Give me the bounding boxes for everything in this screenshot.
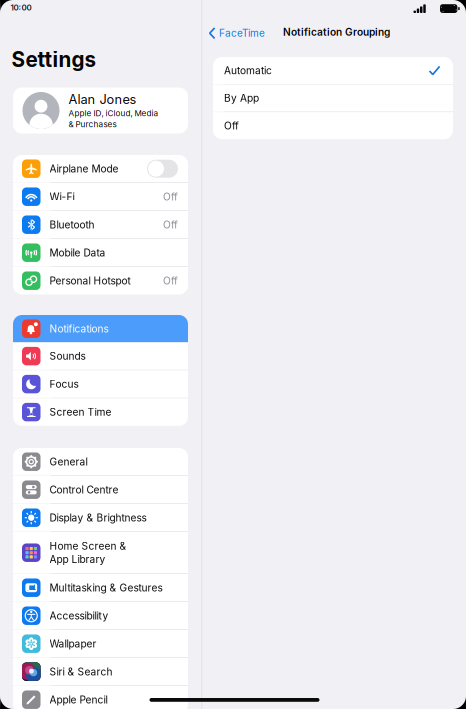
staticText: Notification Grouping: [283, 26, 390, 38]
staticText: Sounds: [49, 350, 85, 362]
staticText: Multitasking & Gestures: [49, 582, 162, 594]
button[interactable]: Accessibility: [13, 602, 188, 629]
button[interactable]: Focus: [13, 370, 188, 398]
button[interactable]: Sounds: [13, 342, 188, 370]
button[interactable]: Alan Jones: [13, 87, 188, 133]
button[interactable]: Airplane Mode, off: [147, 160, 178, 178]
staticText: Off: [224, 120, 239, 132]
staticText: & Purchases: [68, 119, 116, 129]
staticText: Airplane Mode: [49, 163, 118, 175]
staticText: Off: [163, 275, 178, 287]
staticText: Notifications: [49, 323, 108, 335]
staticText: Siri & Search: [49, 666, 112, 678]
staticText: App Library: [49, 553, 105, 565]
staticText: Automatic: [224, 64, 272, 77]
staticText: Apple ID, iCloud, Media: [68, 108, 158, 118]
button[interactable]: General: [13, 448, 188, 475]
button[interactable]: Mobile Data: [13, 239, 188, 266]
staticText: Wi-Fi: [49, 191, 74, 203]
staticText: Wallpaper: [49, 638, 96, 650]
button[interactable]: Display & Brightness: [13, 504, 188, 531]
button[interactable]: Siri & Search: [13, 658, 188, 685]
staticText: Focus: [49, 378, 78, 390]
staticText: Off: [163, 191, 178, 203]
staticText: 10:00: [10, 3, 31, 12]
staticText: Control Centre: [49, 484, 118, 496]
staticText: Settings: [11, 47, 96, 72]
staticText: FaceTime: [219, 27, 265, 39]
button[interactable]: Wallpaper: [13, 630, 188, 657]
staticText: By App: [224, 92, 259, 104]
button[interactable]: Apple Pencil: [13, 686, 188, 709]
staticText: Mobile Data: [49, 247, 105, 259]
staticText: Bluetooth: [49, 219, 94, 231]
button[interactable]: Control Centre: [13, 476, 188, 503]
staticText: General: [49, 456, 87, 468]
staticText: Home Screen &: [49, 540, 126, 552]
button[interactable]: Wi-Fi: [13, 183, 188, 210]
button[interactable]: Home Screen &: [13, 532, 188, 573]
staticText: Off: [163, 219, 178, 231]
staticText: Accessibility: [49, 610, 108, 622]
button[interactable]: Notifications: [13, 315, 188, 342]
staticText: Alan Jones: [68, 92, 136, 107]
button[interactable]: Screen Time: [13, 398, 188, 426]
staticText: Screen Time: [49, 406, 111, 418]
button[interactable]: Bluetooth: [13, 211, 188, 238]
button[interactable]: FaceTime: [208, 24, 265, 42]
button[interactable]: Automatic: [213, 57, 453, 84]
button[interactable]: Multitasking & Gestures: [13, 574, 188, 601]
button[interactable]: Off: [213, 112, 453, 139]
button[interactable]: Personal Hotspot: [13, 267, 188, 294]
button[interactable]: Airplane Mode: [13, 155, 188, 182]
staticText: Apple Pencil: [49, 694, 107, 706]
staticText: Personal Hotspot: [49, 275, 130, 287]
button[interactable]: By App: [213, 85, 453, 112]
staticText: Display & Brightness: [49, 512, 146, 524]
